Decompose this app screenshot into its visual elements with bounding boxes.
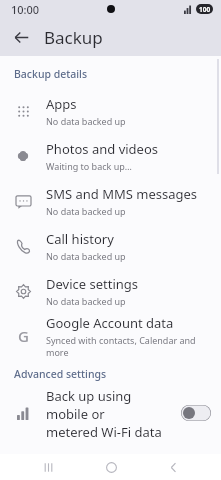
- staticText: No data backed up: [46, 115, 126, 127]
- staticText: Back up using mobile or: [46, 387, 175, 423]
- staticText: Waiting to back up…: [46, 160, 132, 172]
- staticText: G: [18, 326, 29, 346]
- staticText: Backup: [44, 26, 103, 49]
- button[interactable]: Back up using mobile or: [0, 387, 221, 439]
- button[interactable]: Photos and videos: [0, 133, 221, 178]
- button[interactable]: Back: [158, 454, 188, 480]
- button[interactable]: Home: [96, 454, 126, 480]
- staticText: Call history: [46, 230, 114, 248]
- button[interactable]: Back up using mobile data toggle: [181, 405, 211, 421]
- staticText: Device settings: [46, 275, 139, 293]
- button[interactable]: Call history: [0, 223, 221, 268]
- staticText: SMS and MMS messages: [46, 185, 198, 203]
- staticText: Photos and videos: [46, 140, 159, 158]
- staticText: 100: [199, 5, 211, 14]
- button[interactable]: G: [0, 313, 221, 358]
- staticText: No data backed up: [46, 295, 126, 307]
- staticText: Synced with contacts, Calendar and more: [46, 334, 207, 358]
- staticText: Apps: [46, 95, 77, 113]
- staticText: No data backed up: [46, 250, 126, 262]
- button[interactable]: SMS and MMS messages: [0, 178, 221, 223]
- staticText: Advanced settings: [14, 367, 107, 381]
- button[interactable]: Device settings: [0, 268, 221, 313]
- staticText: No data backed up: [46, 205, 126, 217]
- staticText: 10:00: [11, 2, 40, 17]
- staticText: metered Wi-Fi data: [46, 423, 162, 439]
- button[interactable]: Apps: [0, 88, 221, 133]
- button[interactable]: Back: [6, 22, 36, 52]
- staticText: Google Account data: [46, 314, 174, 332]
- staticText: Backup details: [14, 67, 88, 81]
- button[interactable]: Recent apps: [33, 454, 63, 480]
